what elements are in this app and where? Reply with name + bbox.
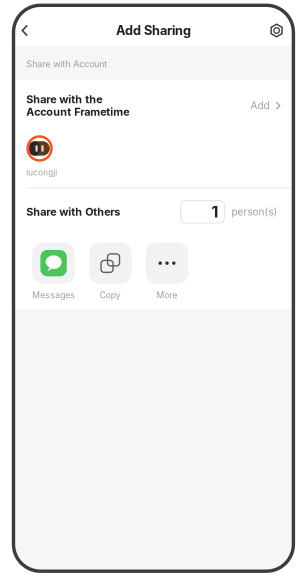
button[interactable]: Share with the <box>12 80 295 130</box>
staticText: Account Frametime <box>26 105 129 118</box>
button[interactable]: Back <box>16 17 34 43</box>
staticText: lucongji <box>26 168 57 177</box>
staticText: Add Sharing <box>116 23 191 38</box>
staticText: Share with Others <box>26 205 120 218</box>
staticText: 1 <box>211 202 218 221</box>
staticText: Share with the <box>26 93 102 106</box>
button[interactable]: More <box>146 242 188 300</box>
staticText: Add <box>250 100 269 112</box>
staticText: Messages <box>32 290 75 300</box>
button[interactable]: Messages <box>32 242 75 300</box>
staticText: More <box>156 290 177 300</box>
staticText: person(s) <box>231 206 277 218</box>
button[interactable]: Settings <box>268 17 286 43</box>
staticText: Share with Account <box>26 59 107 69</box>
button[interactable]: Copy <box>89 242 132 300</box>
staticText: Copy <box>100 290 121 300</box>
